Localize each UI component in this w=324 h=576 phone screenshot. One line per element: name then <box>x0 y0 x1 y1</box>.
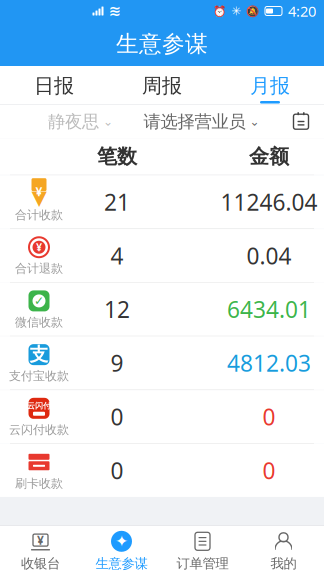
button[interactable]: 日报 <box>0 66 108 104</box>
staticText: 订单管理 <box>176 555 228 572</box>
staticText: ≋ <box>108 3 120 19</box>
button[interactable]: ¥ <box>0 526 81 576</box>
staticText: 9 <box>110 348 123 378</box>
staticText: 12 <box>104 294 130 324</box>
staticText: 4 <box>110 240 123 271</box>
staticText: ¥ <box>35 184 42 199</box>
staticText: 🔕 <box>246 5 259 17</box>
staticText: 笔数 <box>97 144 137 169</box>
staticText: 日报 <box>34 73 74 98</box>
staticText: 我的 <box>270 555 296 572</box>
staticText: ✳ <box>231 4 241 18</box>
staticText: 合计退款 <box>15 261 63 276</box>
staticText: 0.04 <box>246 240 291 271</box>
button[interactable]: ✦ <box>81 526 162 576</box>
staticText: ✓ <box>34 294 44 308</box>
staticText: 6434.01 <box>227 294 311 324</box>
staticText: ¥ <box>37 532 44 548</box>
staticText: 刷卡收款 <box>15 476 63 491</box>
staticText: ✦ <box>115 532 128 550</box>
staticText: 0 <box>262 455 275 485</box>
staticText: 云闪付收款 <box>9 422 69 437</box>
staticText: 请选择营业员 <box>143 111 245 132</box>
staticText: 静夜思 <box>48 111 99 132</box>
staticText: 支 <box>29 343 48 366</box>
staticText: 收银台 <box>21 555 60 572</box>
staticText: 周报 <box>142 73 182 98</box>
staticText: 0 <box>262 402 275 432</box>
staticText: 0 <box>110 402 123 432</box>
staticText: ¥ <box>36 240 42 254</box>
staticText: 合计收款 <box>15 207 63 222</box>
staticText: 微信收款 <box>15 315 63 330</box>
staticText: 生意参谋 <box>116 30 208 58</box>
button[interactable]: 静夜思 <box>42 105 119 139</box>
staticText: 11246.04 <box>220 187 317 217</box>
button[interactable]: 订单管理 <box>162 526 243 576</box>
staticText: ▼ <box>31 186 46 209</box>
staticText: ⌄ <box>249 115 259 128</box>
staticText: 月报 <box>250 73 290 98</box>
staticText: 4812.03 <box>227 348 311 378</box>
staticText: 生意参谋 <box>95 555 147 572</box>
staticText: 0 <box>110 455 123 485</box>
button[interactable]: 周报 <box>108 66 216 104</box>
button[interactable]: 选择日期 <box>284 105 318 139</box>
staticText: ⏰ <box>213 5 226 17</box>
button[interactable]: 月报 <box>216 66 324 104</box>
staticText: 4:20 <box>288 1 316 21</box>
staticText: 21 <box>104 187 130 217</box>
staticText: 云闪付 <box>27 401 51 411</box>
staticText: 金额 <box>249 144 289 169</box>
button[interactable]: 我的 <box>243 526 324 576</box>
button[interactable]: 请选择营业员 <box>137 105 265 139</box>
staticText: 支付宝收款 <box>9 369 69 383</box>
staticText: ⌄ <box>103 115 113 128</box>
